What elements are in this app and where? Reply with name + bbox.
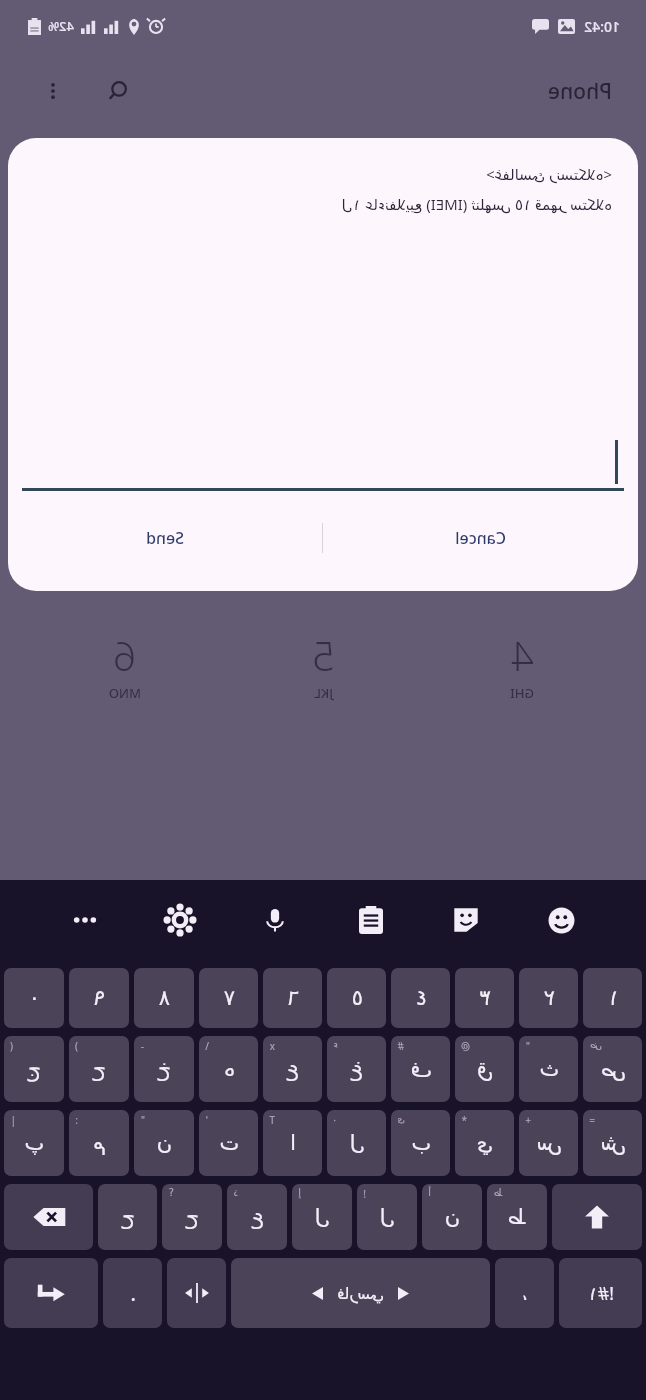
staticText: ABC: [310, 576, 336, 594]
button[interactable]: أ: [422, 1184, 482, 1250]
button[interactable]: *: [455, 1110, 514, 1176]
button[interactable]: Clipboard: [345, 894, 397, 946]
staticText: ثنلهس ١٥ قمهر ستكلاه (IMEI) ل١ عاءنفلايب…: [34, 194, 612, 214]
staticText: <غفالسئ رنستكلاه>: [34, 164, 612, 184]
staticText: |: [10, 1113, 16, 1127]
staticText: ٨: [158, 986, 170, 1010]
button[interactable]: |: [4, 1110, 64, 1176]
button[interactable]: ٨: [134, 968, 194, 1028]
button[interactable]: ٤: [391, 968, 450, 1028]
button[interactable]: (: [4, 1036, 64, 1102]
staticText: #: [397, 1039, 404, 1053]
button[interactable]: ظ: [487, 1184, 547, 1250]
button[interactable]: Search: [94, 68, 140, 114]
button[interactable]: 3: [49, 520, 199, 594]
button[interactable]: ى: [391, 1110, 450, 1176]
button[interactable]: Send: [8, 507, 322, 569]
button[interactable]: !: [357, 1184, 417, 1250]
staticText: ٩: [93, 986, 105, 1010]
button[interactable]: ·: [327, 1110, 386, 1176]
button[interactable]: x: [263, 1036, 322, 1102]
button[interactable]: ": [134, 1110, 194, 1176]
button[interactable]: ): [69, 1036, 129, 1102]
button[interactable]: ٦: [263, 968, 322, 1028]
button[interactable]: ٠: [4, 968, 64, 1028]
staticText: ش: [600, 1131, 626, 1155]
button[interactable]: More: [59, 894, 111, 946]
button[interactable]: 6: [49, 628, 199, 702]
staticText: ": [525, 1039, 530, 1053]
button[interactable]: Stickers: [440, 894, 492, 946]
button[interactable]: -: [134, 1036, 194, 1102]
staticText: ى: [397, 1113, 405, 1125]
button[interactable]: ؟: [162, 1184, 222, 1250]
button[interactable]: ح: [98, 1184, 157, 1250]
button[interactable]: Cancel: [323, 507, 638, 569]
button[interactable]: ': [199, 1110, 258, 1176]
staticText: ن: [156, 1131, 172, 1155]
button[interactable]: إ: [292, 1184, 352, 1250]
button[interactable]: .: [103, 1258, 162, 1328]
button[interactable]: ٧: [199, 968, 258, 1028]
button[interactable]: :: [69, 1110, 129, 1176]
staticText: ن: [444, 1205, 460, 1229]
staticText: -: [140, 1039, 144, 1053]
staticText: ظ: [493, 1187, 503, 1199]
button[interactable]: @: [455, 1036, 514, 1102]
button[interactable]: ٥: [327, 968, 386, 1028]
staticText: @: [461, 1039, 470, 1053]
button[interactable]: 2: [248, 520, 398, 594]
staticText: ٣: [479, 986, 491, 1010]
staticText: (: [10, 1039, 13, 1053]
button[interactable]: Switch keyboard: [167, 1258, 226, 1328]
staticText: 5: [312, 628, 335, 682]
staticText: Phone: [547, 77, 612, 106]
button[interactable]: ٣: [455, 968, 514, 1028]
button[interactable]: ء: [327, 1036, 386, 1102]
staticText: !: [363, 1187, 366, 1201]
staticText: ع: [251, 1205, 264, 1229]
button[interactable]: T: [263, 1110, 322, 1176]
staticText: ): [75, 1039, 78, 1053]
button[interactable]: ض: [583, 1036, 642, 1102]
staticText: ٠: [28, 986, 40, 1010]
staticText: فارسي: [337, 1284, 384, 1303]
staticText: x: [269, 1039, 275, 1053]
button[interactable]: فارسي: [231, 1258, 490, 1328]
button[interactable]: More options: [30, 68, 76, 114]
button[interactable]: 1: [447, 520, 597, 594]
button[interactable]: ٩: [69, 968, 129, 1028]
button[interactable]: [22, 433, 624, 491]
button[interactable]: 5: [248, 628, 398, 702]
staticText: ج: [27, 1057, 41, 1081]
staticText: T: [269, 1113, 275, 1127]
button[interactable]: ": [519, 1036, 578, 1102]
button[interactable]: !#١: [559, 1258, 642, 1328]
button[interactable]: ١: [583, 968, 642, 1028]
staticText: 10:42: [584, 17, 620, 36]
button[interactable]: 4: [447, 628, 597, 702]
button[interactable]: Voice input: [249, 894, 301, 946]
staticText: خ: [157, 1057, 171, 1081]
staticText: ع: [286, 1057, 299, 1081]
button[interactable]: Shift: [552, 1184, 642, 1250]
button[interactable]: ذ: [227, 1184, 287, 1250]
button[interactable]: +: [519, 1110, 578, 1176]
staticText: إ: [298, 1187, 301, 1199]
button[interactable]: =: [583, 1110, 642, 1176]
staticText: 4: [511, 628, 534, 682]
staticText: ١: [607, 986, 619, 1010]
staticText: ص: [600, 1057, 626, 1081]
button[interactable]: Backspace: [4, 1184, 93, 1250]
button[interactable]: Emoji: [535, 894, 587, 946]
staticText: ض: [589, 1039, 602, 1051]
button[interactable]: \: [199, 1036, 258, 1102]
staticText: غ: [350, 1057, 363, 1081]
button[interactable]: Settings: [154, 894, 206, 946]
button[interactable]: ،: [495, 1258, 554, 1328]
button[interactable]: ٢: [519, 968, 578, 1028]
staticText: ح: [121, 1205, 135, 1229]
staticText: .: [130, 1279, 136, 1308]
button[interactable]: #: [391, 1036, 450, 1102]
button[interactable]: Enter: [4, 1258, 98, 1328]
